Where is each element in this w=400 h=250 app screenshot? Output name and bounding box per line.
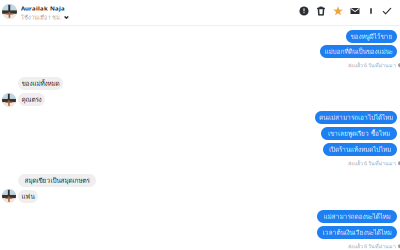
button[interactable]: Done	[381, 5, 393, 17]
staticText: แม่บอกที่ดินเป็นของแม่นะ	[324, 46, 392, 57]
button[interactable]: More options	[366, 5, 376, 17]
button[interactable]: Mark unread	[349, 5, 361, 17]
staticText: ส่งแล้ว 6 วันที่ผ่านมา	[348, 61, 396, 69]
button[interactable]: Star	[332, 5, 344, 17]
staticText: Aurailak Naja	[21, 4, 65, 12]
staticText: คนแม่สามารถเอาไปได้ไหม	[319, 112, 393, 123]
staticText: ใช้งานเมื่อ 1 ชม.	[21, 13, 62, 22]
staticText: ส่งแล้ว 6 วันที่ผ่านมา	[348, 159, 396, 167]
staticText: เขาเลยพูดเรียว ซื้อไหม	[328, 128, 390, 139]
staticText: แม่สามารถดองนะได้ไหม	[323, 211, 390, 222]
staticText: ส่งแล้ว 6 วันที่ผ่านมา	[348, 242, 396, 250]
staticText: คุณตรง	[21, 94, 41, 105]
staticText: เวลาต้นเงินเวียงนะได้ไหม	[322, 227, 391, 238]
staticText: เปิดร้านแท้งหมดไปไหม	[329, 144, 391, 155]
staticText: ของแม่ทั้งหมด	[21, 78, 59, 89]
staticText: แฟน	[21, 191, 34, 202]
button[interactable]: Delete	[315, 5, 327, 17]
staticText: สมุดเขียวเป็นสมุดเกษตร	[24, 175, 89, 186]
button[interactable]: Report spam	[298, 5, 310, 17]
staticText: ของหนูมีไว้ขาย	[350, 31, 392, 42]
